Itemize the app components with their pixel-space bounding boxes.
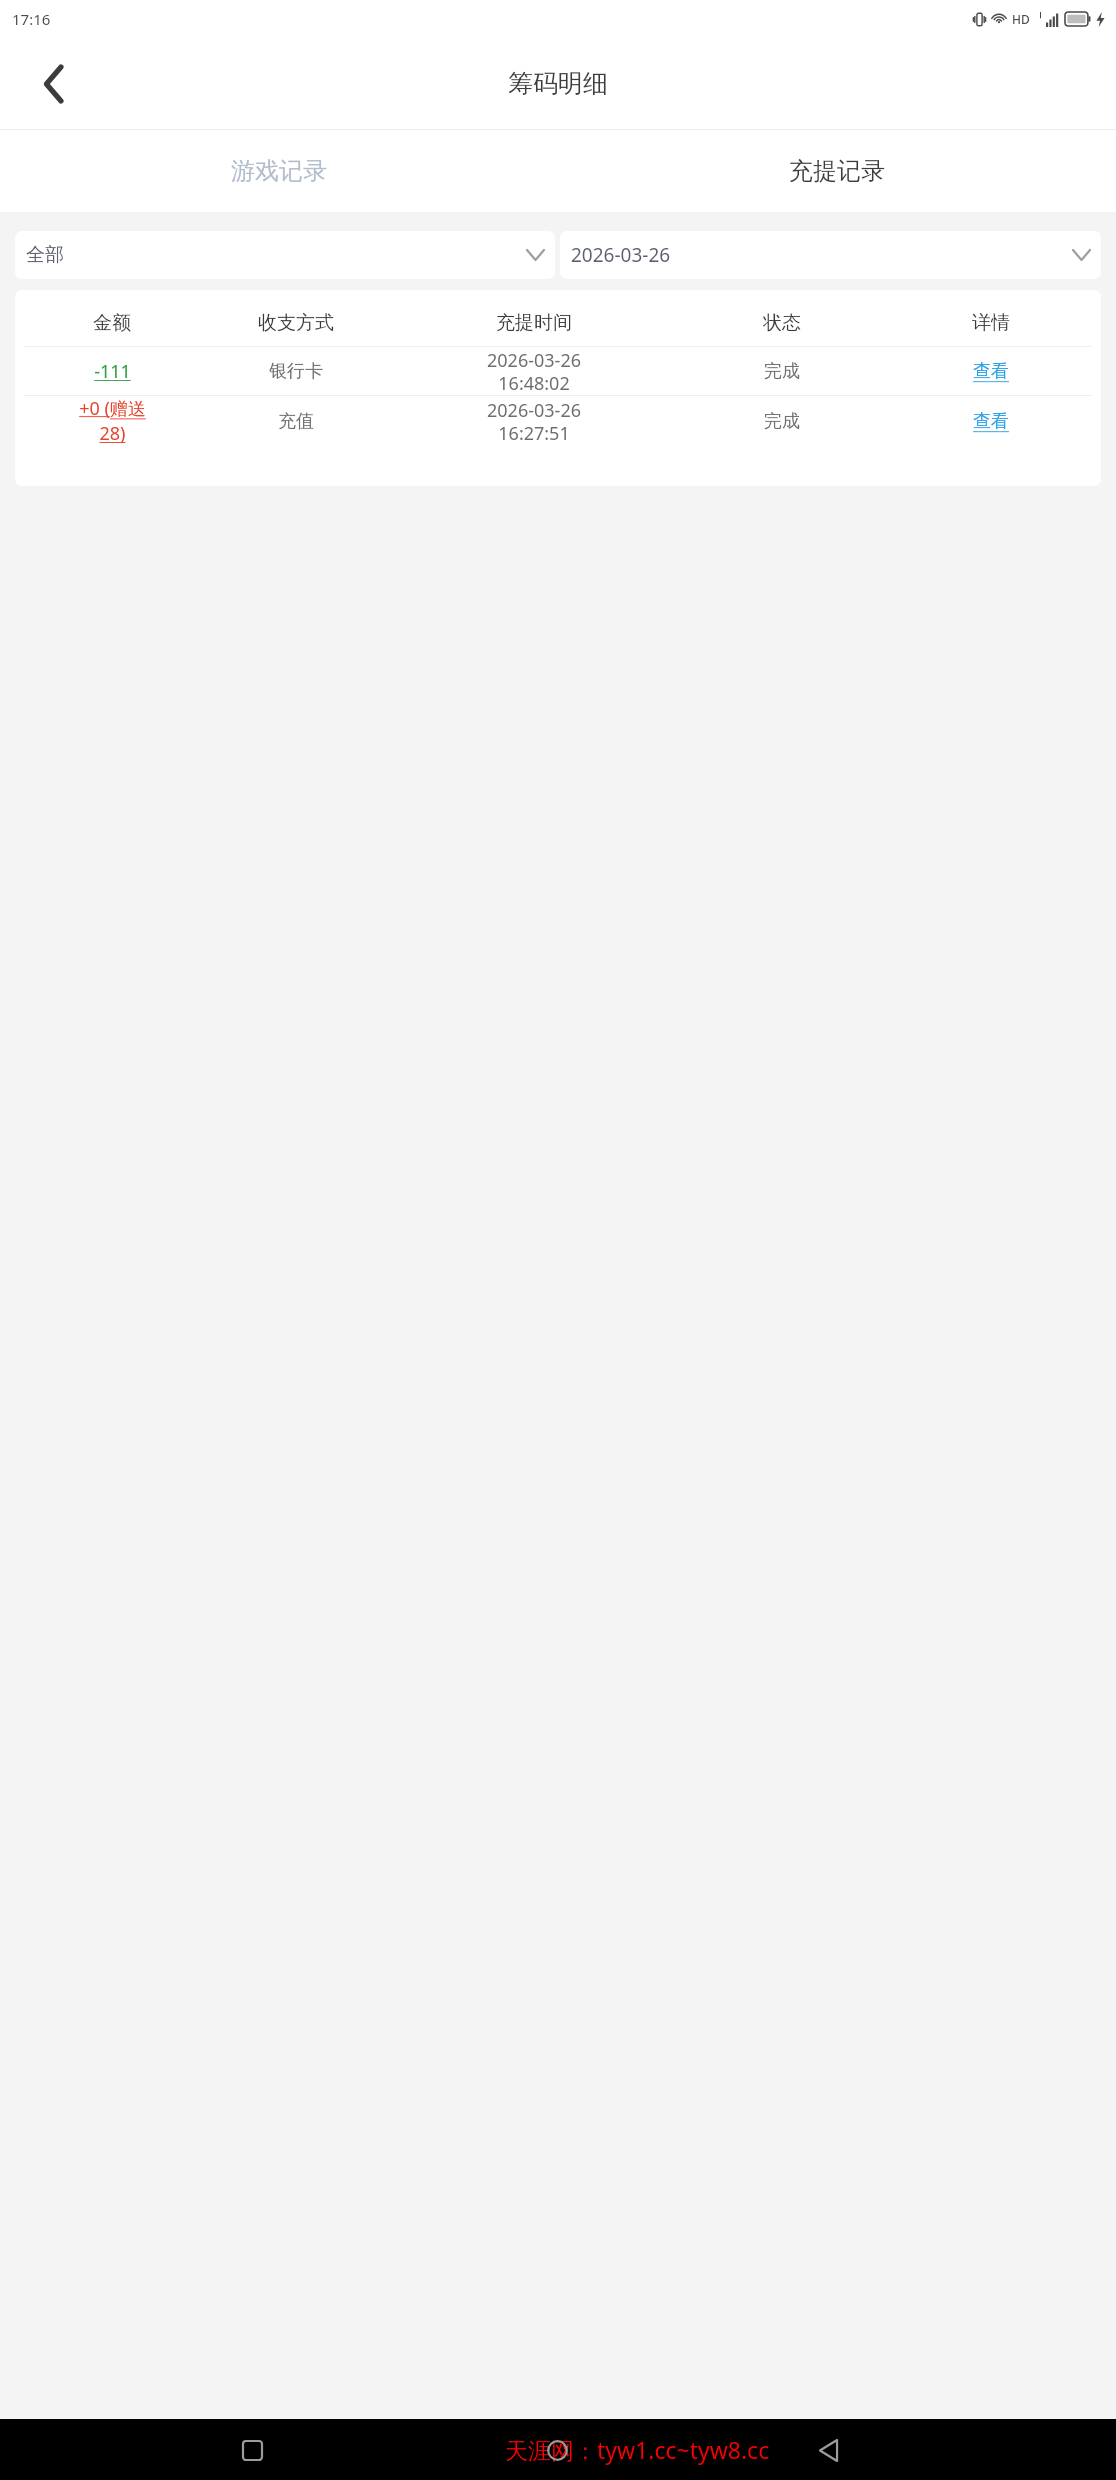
staticText: 充提时间	[496, 311, 572, 335]
button[interactable]: 游戏记录	[0, 130, 558, 212]
staticText: HD	[1012, 11, 1030, 27]
staticText: 完成	[764, 360, 800, 383]
staticText: 查看	[973, 410, 1009, 433]
staticText: 完成	[764, 410, 800, 433]
staticText: 游戏记录	[231, 156, 327, 186]
staticText: 筹码明细	[508, 68, 608, 99]
staticText: 充值	[278, 410, 314, 433]
button[interactable]: 查看	[889, 347, 1092, 395]
staticText: 天涯网：tyw1.cc~tyw8.cc	[505, 2434, 770, 2465]
button[interactable]: Recent apps	[228, 2426, 276, 2474]
button[interactable]: Home	[533, 2426, 581, 2474]
staticText: 2026-03-26	[571, 242, 1073, 268]
staticText: 全部	[26, 243, 527, 267]
staticText: 金额	[93, 311, 131, 335]
button[interactable]: Back	[26, 56, 82, 112]
staticText: -111	[94, 359, 131, 384]
button[interactable]: 全部	[15, 231, 555, 279]
button[interactable]: Back	[804, 2426, 852, 2474]
button[interactable]: 查看	[889, 396, 1092, 446]
staticText: 17:16	[12, 9, 51, 29]
staticText: +0 (赠送 28)	[79, 396, 146, 446]
staticText: 查看	[973, 360, 1009, 383]
button[interactable]: 充提记录	[558, 130, 1116, 212]
staticText: 银行卡	[269, 360, 323, 383]
staticText: 详情	[972, 311, 1010, 335]
staticText: 2026-03-26 16:48:02	[487, 348, 581, 395]
staticText: 收支方式	[258, 311, 334, 335]
button[interactable]: 2026-03-26	[560, 231, 1101, 279]
staticText: 状态	[763, 311, 801, 335]
staticText: 充提记录	[789, 156, 885, 186]
staticText: 2026-03-26 16:27:51	[487, 398, 581, 445]
